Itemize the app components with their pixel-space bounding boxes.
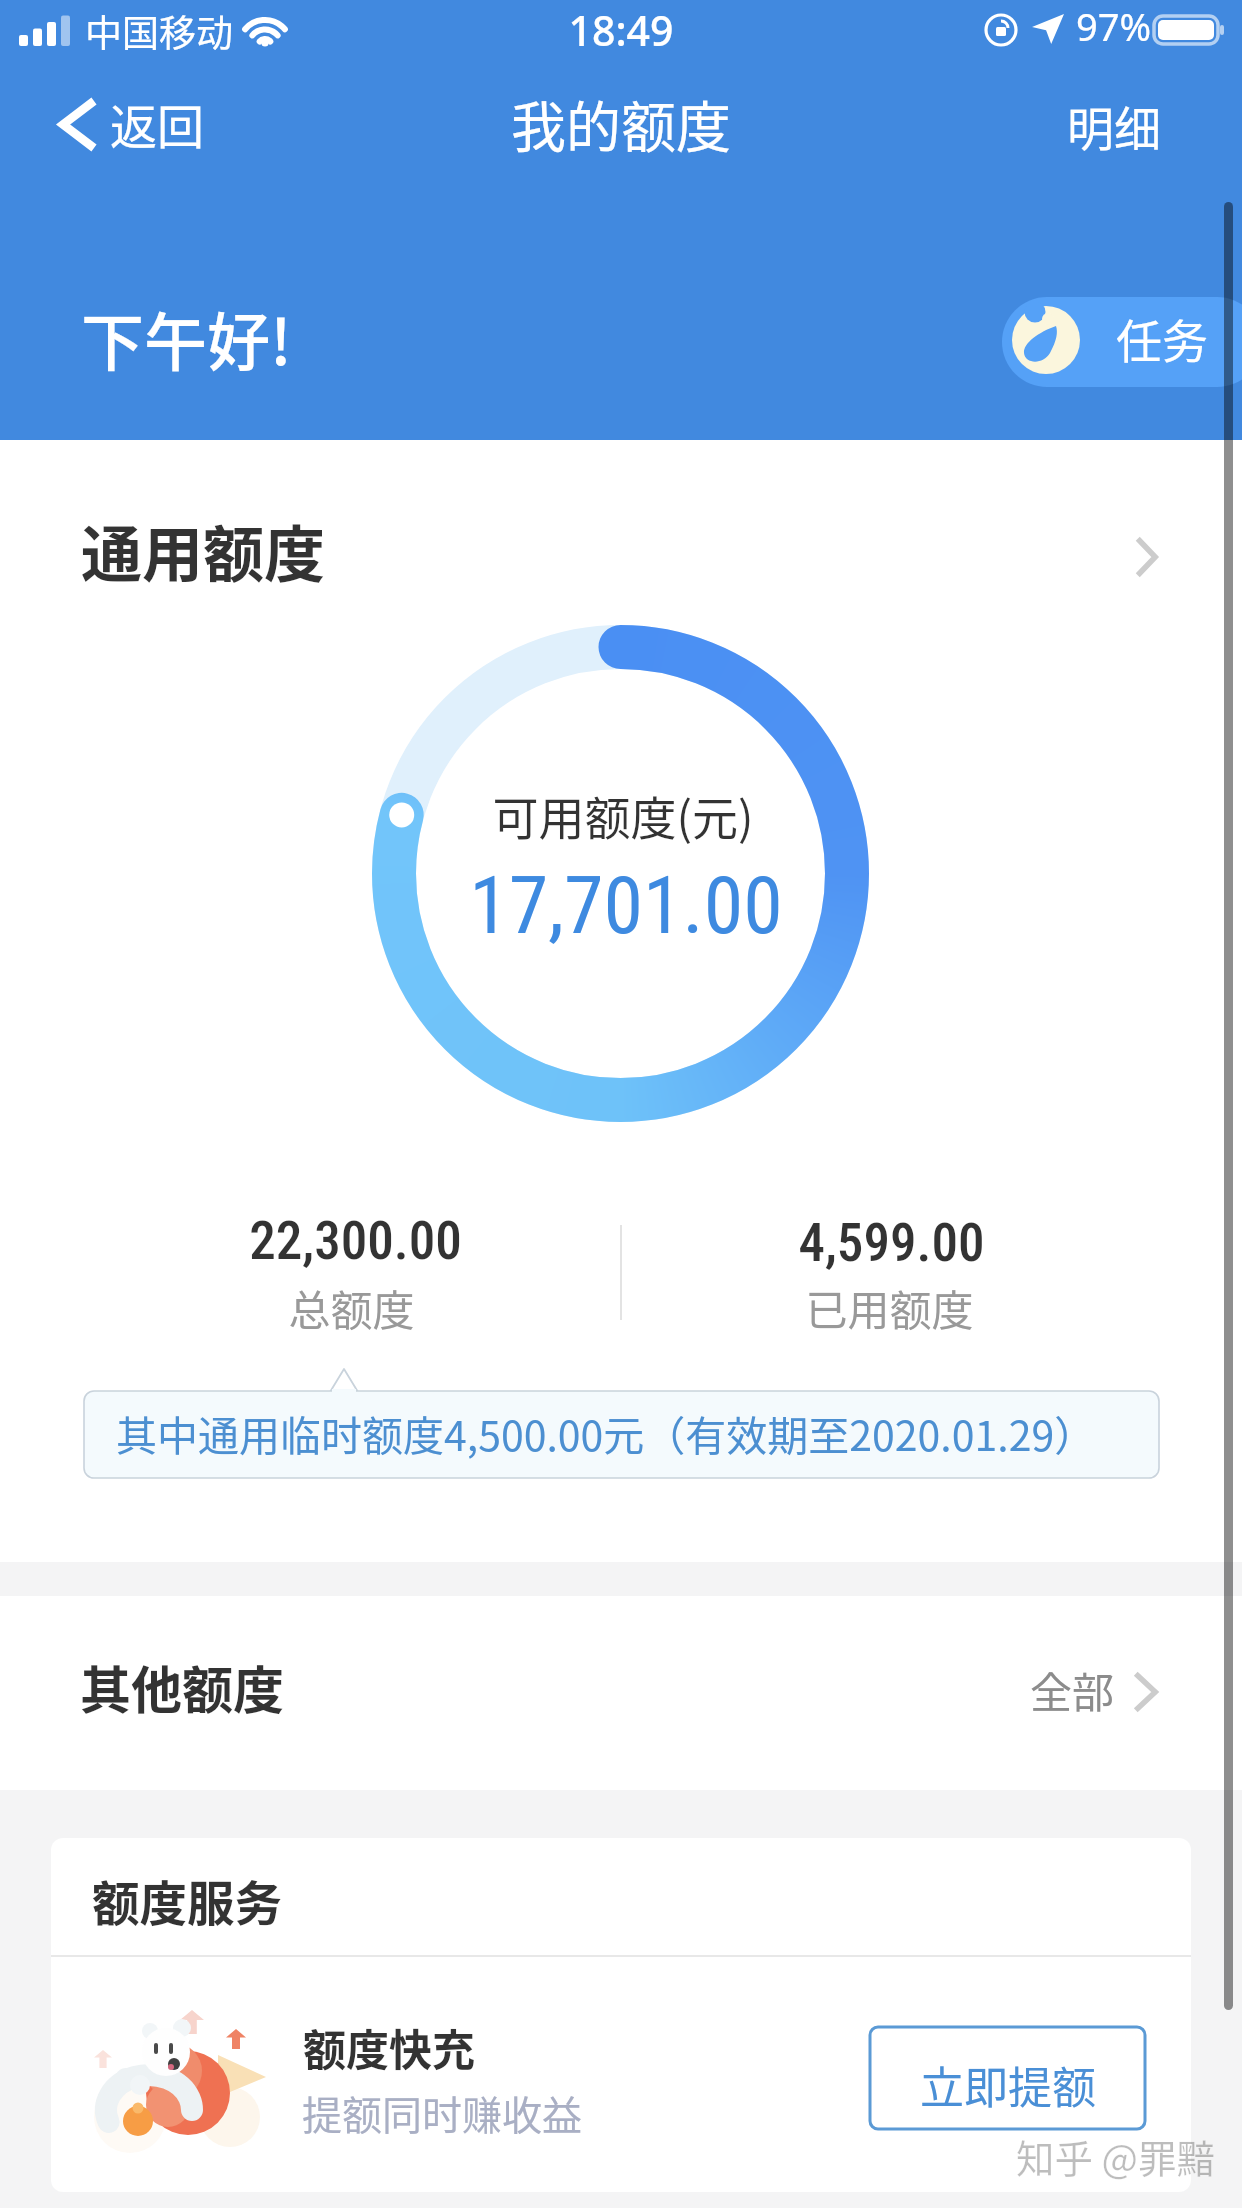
staticText: 额度服务 bbox=[92, 1866, 282, 1935]
staticText: 我的额度 bbox=[0, 83, 1242, 163]
staticText: 4,599.00 bbox=[622, 1212, 1161, 1274]
staticText: 总额度 bbox=[83, 1277, 620, 1338]
button[interactable]: Back bbox=[40, 86, 210, 166]
button[interactable]: 通用额度 bbox=[0, 470, 1242, 620]
staticText: 22,300.00 bbox=[87, 1210, 624, 1272]
staticText: 提额同时赚收益 bbox=[302, 2084, 582, 2142]
button[interactable]: Tasks bbox=[1002, 297, 1242, 387]
button[interactable]: 明细 bbox=[1040, 86, 1176, 166]
staticText: 通用额度 bbox=[81, 506, 326, 594]
staticText: 其中通用临时额度4,500.00元（有效期至2020.01.29） bbox=[116, 1403, 1096, 1462]
staticText: 明细 bbox=[1067, 91, 1161, 159]
button[interactable]: 额度快充 bbox=[51, 1957, 1191, 2192]
staticText: 可用额度(元) bbox=[2, 782, 1242, 849]
button[interactable]: 其他额度 bbox=[0, 1596, 1242, 1790]
staticText: 额度快充 bbox=[303, 2016, 475, 2078]
staticText: 下午好! bbox=[81, 292, 292, 383]
staticText: 知乎 @罪黯 bbox=[1016, 2128, 1216, 2184]
staticText: 任务 bbox=[1116, 305, 1208, 372]
staticText: 已用额度 bbox=[620, 1277, 1159, 1338]
staticText: 返回 bbox=[110, 89, 204, 157]
button[interactable]: 立即提额 bbox=[870, 2027, 1145, 2129]
staticText: 立即提额 bbox=[920, 2053, 1096, 2117]
staticText: 全部 bbox=[1030, 1659, 1115, 1720]
staticText: 中国移动 bbox=[85, 4, 233, 58]
staticText: 18:49 bbox=[0, 2, 1242, 58]
other: Tasks bbox=[1012, 306, 1080, 374]
staticText: 97% bbox=[1076, 0, 1152, 52]
staticText: 其他额度 bbox=[80, 1650, 285, 1724]
staticText: 17,701.00 bbox=[5, 859, 1242, 953]
